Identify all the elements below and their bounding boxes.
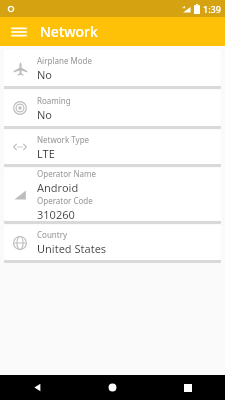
- staticText: Operator Name: [37, 168, 96, 179]
- button[interactable]: Country: [4, 225, 221, 260]
- button[interactable]: Open navigation menu: [8, 21, 30, 43]
- staticText: United States: [37, 241, 107, 256]
- staticText: 1:39: [203, 3, 221, 15]
- button[interactable]: Network Type: [4, 130, 221, 164]
- button[interactable]: Recent apps: [150, 375, 225, 400]
- staticText: Country: [37, 229, 68, 240]
- staticText: Airplane Mode: [37, 55, 93, 66]
- staticText: No: [37, 67, 53, 82]
- staticText: Android: [37, 180, 79, 195]
- button[interactable]: Roaming: [4, 90, 221, 126]
- staticText: LTE: [37, 146, 55, 161]
- staticText: Roaming: [37, 95, 71, 106]
- button[interactable]: Operator Name: [4, 168, 221, 221]
- button[interactable]: Back: [0, 375, 75, 400]
- staticText: No: [37, 107, 53, 122]
- staticText: Network Type: [37, 134, 90, 145]
- staticText: Operator Code: [37, 195, 93, 206]
- staticText: 310260: [37, 207, 75, 221]
- staticText: Network: [40, 22, 98, 41]
- button[interactable]: Airplane Mode: [4, 50, 221, 86]
- button[interactable]: Home: [75, 375, 150, 400]
